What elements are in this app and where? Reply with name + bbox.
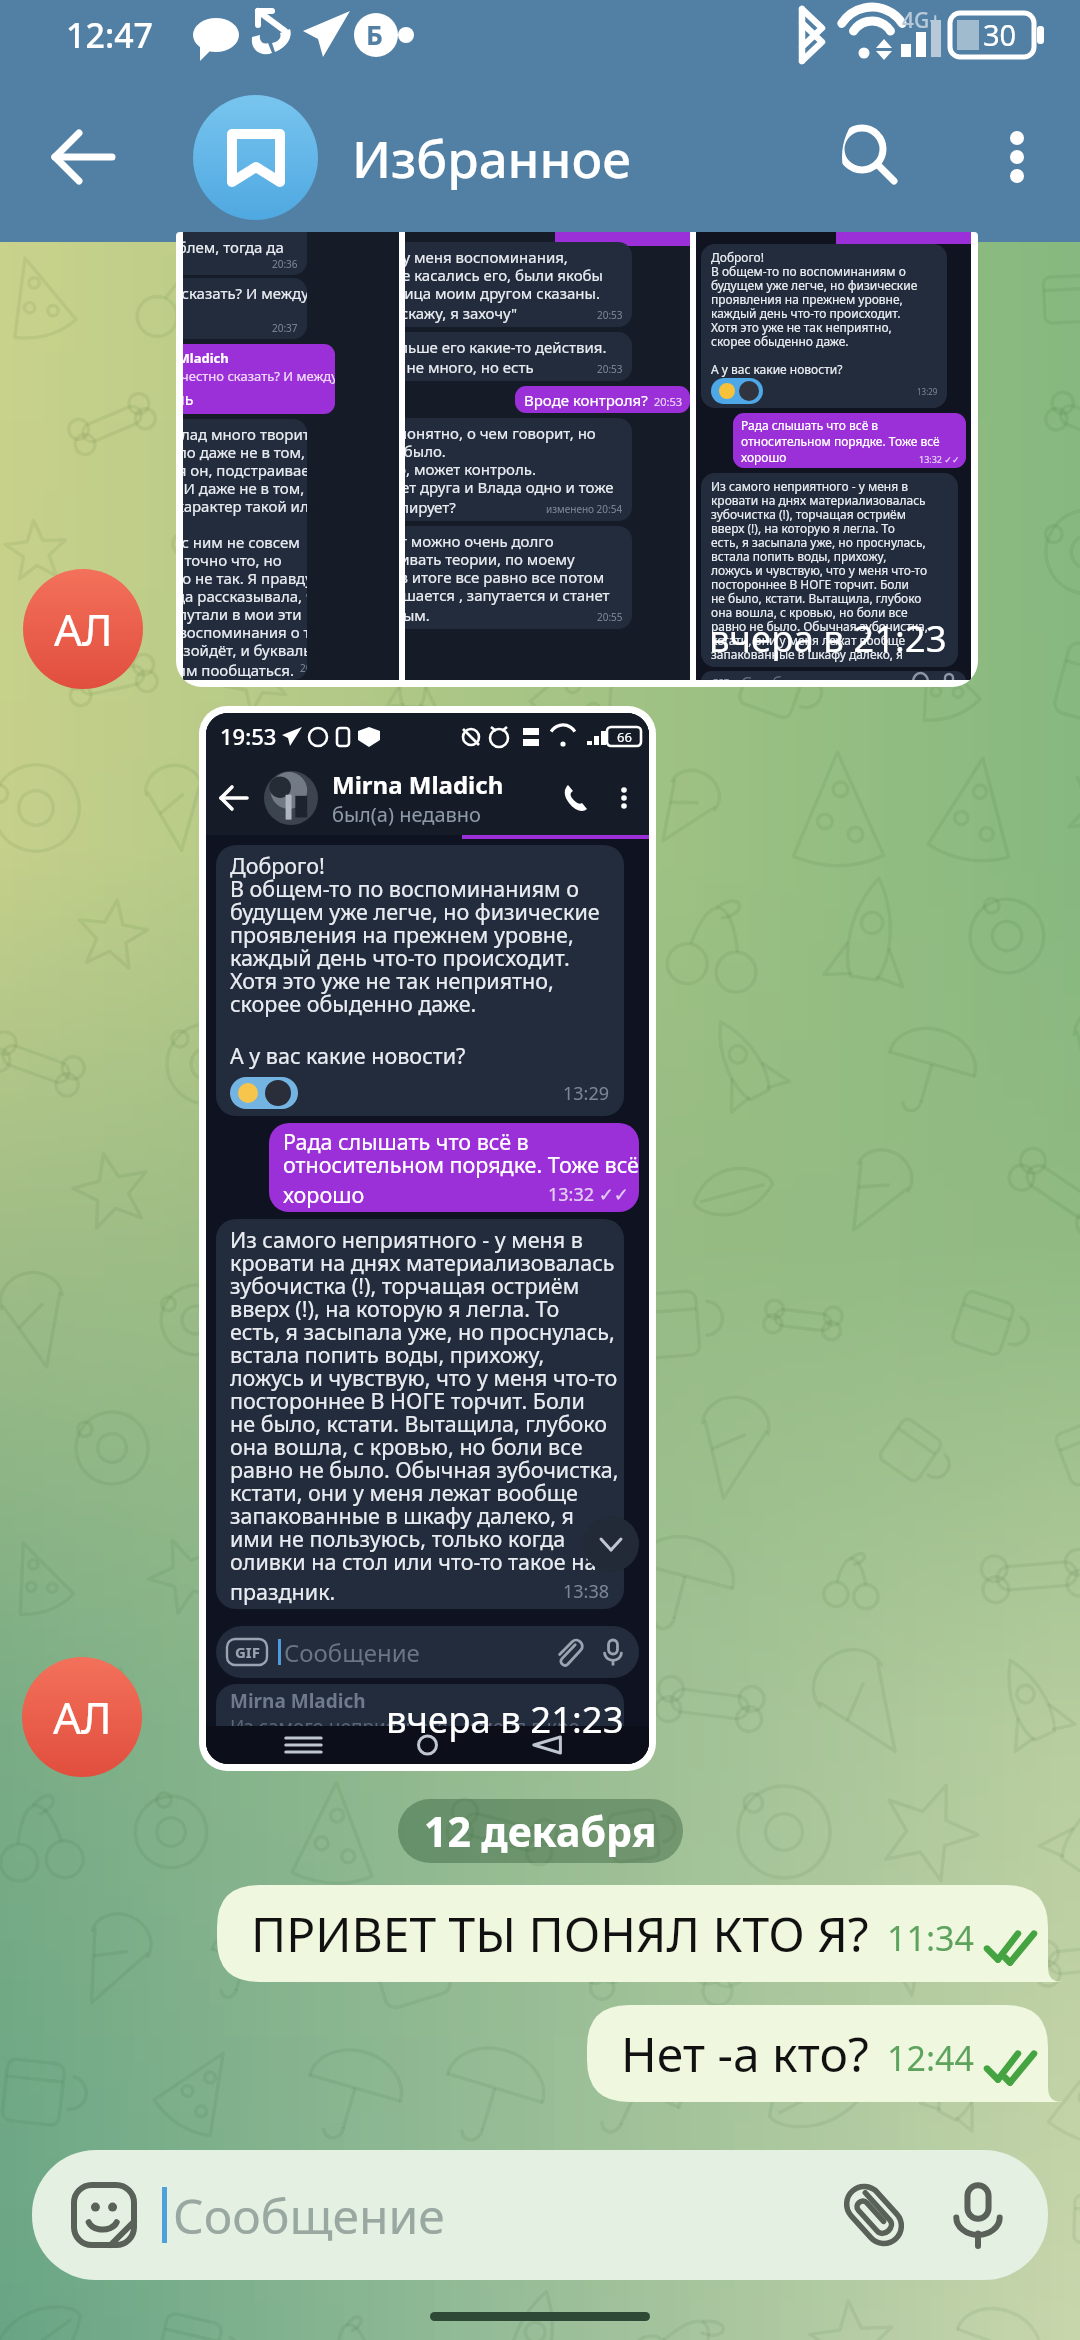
- staticText: 20:53: [654, 394, 683, 409]
- staticText: 30: [983, 15, 1017, 54]
- button[interactable]: Stickers: [68, 2179, 140, 2251]
- staticText: . Е. "Я скажу, я захочу": [405, 303, 518, 323]
- staticText: Mirna Mladich: [230, 1688, 366, 1714]
- staticText: 19:53: [220, 721, 277, 751]
- button[interactable]: ПРИВЕТ ТЫ ПОНЯЛ КТО Я?: [217, 1885, 1064, 1982]
- button[interactable]: 19:53: [206, 713, 649, 1764]
- staticText: Я могу честно сказать? И между н: [183, 367, 328, 385]
- staticText: Б: [366, 17, 383, 52]
- staticText: 12 декабря: [424, 1803, 657, 1859]
- staticText: тавили с ним пообщаться.: [183, 660, 294, 676]
- staticText: енных проблем, тогда да: [183, 237, 284, 257]
- staticText: онтролирует?: [405, 497, 456, 517]
- staticText: 11:34: [887, 1915, 974, 1961]
- staticText: то не понятно, о чем говорит, но от так …: [405, 423, 614, 497]
- staticText: 4G+: [902, 6, 942, 35]
- staticText: Доброго! В общем-то по воспоминаниям о б…: [230, 851, 600, 1019]
- staticText: Из самого неприятного - у меня в кровати…: [711, 478, 928, 663]
- staticText: Mirna Mladich: [183, 349, 229, 367]
- staticText: 20:53: [597, 362, 623, 376]
- button[interactable]: Stickers: [32, 2150, 1048, 2280]
- staticText: изменено 20:54: [546, 502, 623, 516]
- staticText: 20:36: [272, 257, 298, 271]
- staticText: вчера в 21:23: [386, 1694, 624, 1744]
- button[interactable]: Back: [28, 102, 138, 212]
- button[interactable]: АЛ: [22, 1657, 142, 1777]
- staticText: 13:32 ✓✓: [919, 453, 960, 465]
- staticText: отя тут можно очень долго ыстраивать тео…: [405, 531, 610, 605]
- staticText: 20:55: [597, 610, 623, 624]
- staticText: GIF: [235, 1642, 260, 1662]
- staticText: АЛ: [53, 1687, 112, 1747]
- staticText: вчера в 21:23: [709, 613, 947, 663]
- staticText: 20:37: [272, 321, 298, 335]
- button[interactable]: Search: [842, 97, 962, 217]
- staticText: 13:38: [563, 1579, 610, 1604]
- staticText: ятно, что Влад много творит нды, но дело…: [183, 424, 298, 660]
- button[interactable]: енных проблем, тогда да: [183, 232, 971, 680]
- staticText: огу честно сказать? И между и: [183, 283, 298, 321]
- staticText: ногда у меня воспоминания, оторые касали…: [405, 247, 603, 303]
- staticText: Сообщение: [284, 1636, 420, 1669]
- staticText: Вроде контроля?: [524, 390, 648, 410]
- staticText: 13:29: [563, 1081, 610, 1106]
- staticText: 12:44: [887, 2035, 974, 2081]
- staticText: праздник.: [230, 1577, 336, 1606]
- staticText: Сообщение: [741, 671, 838, 680]
- staticText: 20:53: [597, 308, 623, 322]
- staticText: Доброго! В общем-то по воспоминаниям о б…: [711, 249, 918, 378]
- staticText: Из самого неприятного - у меня в кровати…: [230, 1225, 612, 1577]
- staticText: 13:29: [917, 386, 938, 397]
- button[interactable]: Нет -а кто?: [587, 2005, 1064, 2102]
- button[interactable]: 12 декабря: [424, 1799, 657, 1863]
- button[interactable]: Voice message: [934, 2171, 1022, 2259]
- staticText: относительном порядке. Тоже всё: [741, 433, 940, 449]
- button[interactable]: Saved Messages: [193, 95, 318, 220]
- staticText: хорошо: [283, 1180, 365, 1209]
- staticText: 13:32 ✓✓: [548, 1182, 629, 1207]
- staticText: Избранное: [352, 123, 631, 192]
- staticText: 12:47: [66, 12, 154, 58]
- staticText: GIF: [711, 675, 730, 680]
- staticText: уманным.: [405, 605, 430, 625]
- staticText: Mirna Mladich: [332, 768, 504, 801]
- staticText: 66: [617, 728, 632, 746]
- staticText: Можешь: [183, 388, 194, 410]
- staticText: Рада слышать что всё в относительном пор…: [283, 1127, 629, 1180]
- staticText: о него не много, но есть: [405, 357, 534, 377]
- button[interactable]: More options: [962, 102, 1072, 212]
- staticText: хорошо: [741, 449, 787, 465]
- staticText: Нет -а кто?: [621, 2021, 869, 2086]
- staticText: у и дальше его какие-то действия.: [405, 337, 607, 357]
- staticText: Из самого неприятного - у меня в кро...: [230, 1714, 596, 1726]
- staticText: А у вас какие новости?: [230, 1041, 466, 1070]
- staticText: Сообщение: [173, 2183, 445, 2248]
- button[interactable]: АЛ: [23, 569, 143, 689]
- button[interactable]: Attach: [830, 2171, 918, 2259]
- staticText: был(а) недавно: [332, 801, 481, 828]
- staticText: АЛ: [54, 599, 113, 659]
- staticText: ПРИВЕТ ТЫ ПОНЯЛ КТО Я?: [251, 1901, 869, 1966]
- staticText: Рада слышать что всё в: [741, 417, 879, 433]
